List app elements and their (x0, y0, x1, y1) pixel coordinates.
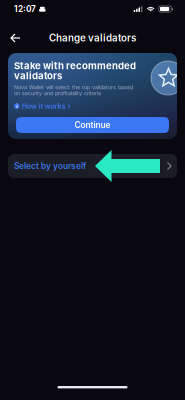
staticText: Select by yourself (14, 161, 86, 171)
staticText: Nova Wallet will select the top validato… (14, 84, 133, 91)
button[interactable]: Back (5, 28, 26, 48)
staticText: How it works (22, 102, 66, 110)
staticText: Continue (74, 120, 110, 130)
staticText: i (16, 103, 17, 109)
staticText: Change validators (49, 32, 136, 44)
button[interactable]: Select by yourself (8, 154, 177, 178)
staticText: validators (14, 70, 62, 82)
button[interactable]: i (14, 102, 70, 110)
staticText: 12:07 (14, 4, 36, 14)
button[interactable]: Continue (16, 117, 169, 133)
staticText: Stake with recommended (14, 60, 136, 72)
staticText: on security and profitability criteria (14, 90, 101, 97)
